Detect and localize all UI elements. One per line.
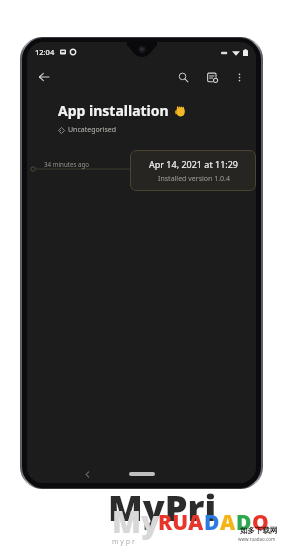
staticText: App installation bbox=[58, 101, 169, 120]
staticText: 12:04 bbox=[35, 47, 55, 57]
staticText: Installed version 1.0.4 bbox=[158, 174, 230, 184]
staticText: My bbox=[112, 501, 160, 542]
button[interactable]: Back bbox=[79, 466, 95, 482]
staticText: Apr 14, 2021 at 11:29 bbox=[149, 158, 238, 170]
button[interactable]: Apr 14, 2021 at 11:29 bbox=[130, 150, 256, 191]
staticText: MyPri bbox=[108, 483, 217, 532]
staticText: 如多下载网 bbox=[240, 526, 278, 535]
button[interactable]: Back bbox=[31, 64, 57, 90]
staticText: D bbox=[204, 508, 220, 537]
staticText: m y p r bbox=[112, 537, 135, 547]
staticText: www.ruadao.com bbox=[238, 536, 276, 542]
button[interactable]: Home bbox=[129, 472, 155, 476]
staticText: RUA bbox=[158, 508, 204, 537]
staticText: A bbox=[220, 508, 236, 537]
staticText: D bbox=[236, 508, 252, 537]
button[interactable]: Search bbox=[171, 65, 195, 89]
staticText: 34 minutes ago bbox=[44, 160, 90, 168]
button[interactable]: Calendar view bbox=[200, 65, 224, 89]
staticText: Uncategorised bbox=[68, 125, 117, 135]
button[interactable]: More options bbox=[227, 65, 251, 89]
staticText: O bbox=[252, 508, 269, 537]
